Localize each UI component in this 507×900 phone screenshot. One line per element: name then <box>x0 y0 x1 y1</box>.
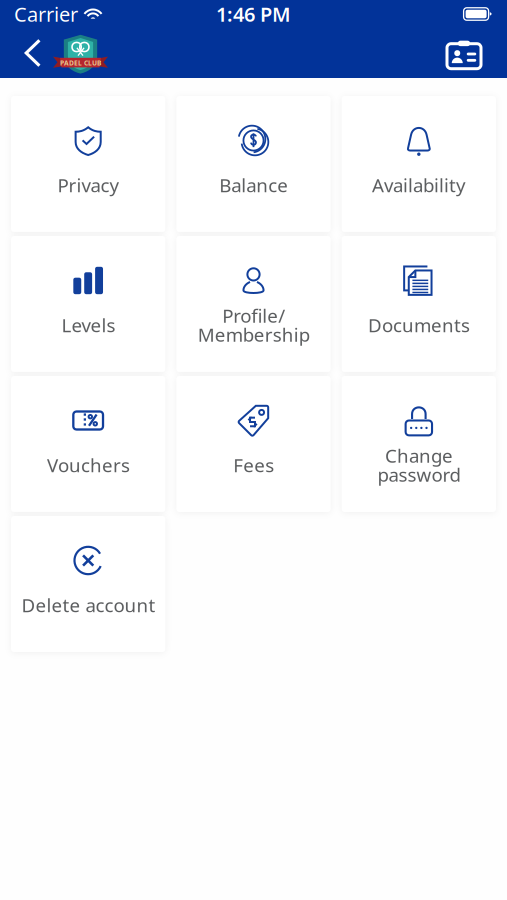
staticText: Carrier <box>14 1 78 27</box>
staticText: PADEL CLUB <box>60 58 101 67</box>
button[interactable]: Documents <box>342 236 496 372</box>
staticText: Documents <box>368 313 470 337</box>
staticText: 1:46 PM <box>216 1 291 27</box>
button[interactable]: Delete account <box>11 516 165 652</box>
button[interactable]: Availability <box>342 96 496 232</box>
staticText: Fees <box>233 453 274 477</box>
staticText: Levels <box>61 313 115 337</box>
staticText: Privacy <box>57 173 119 197</box>
button[interactable]: Back <box>0 27 53 78</box>
staticText: Availability <box>372 173 466 197</box>
staticText: Profile/ Membership <box>197 303 309 347</box>
button[interactable]: Vouchers <box>11 376 165 512</box>
staticText: Balance <box>219 173 288 197</box>
button[interactable]: Fees <box>176 376 331 512</box>
button[interactable]: Privacy <box>11 96 165 232</box>
staticText: Delete account <box>21 593 155 617</box>
button[interactable]: Levels <box>11 236 165 372</box>
staticText: Vouchers <box>47 453 130 477</box>
button[interactable]: Membership card <box>424 27 507 79</box>
staticText: Change password <box>377 443 460 487</box>
button[interactable]: Profile/ Membership <box>176 236 331 372</box>
button[interactable]: Balance <box>176 96 331 232</box>
button[interactable]: Change password <box>342 376 496 512</box>
